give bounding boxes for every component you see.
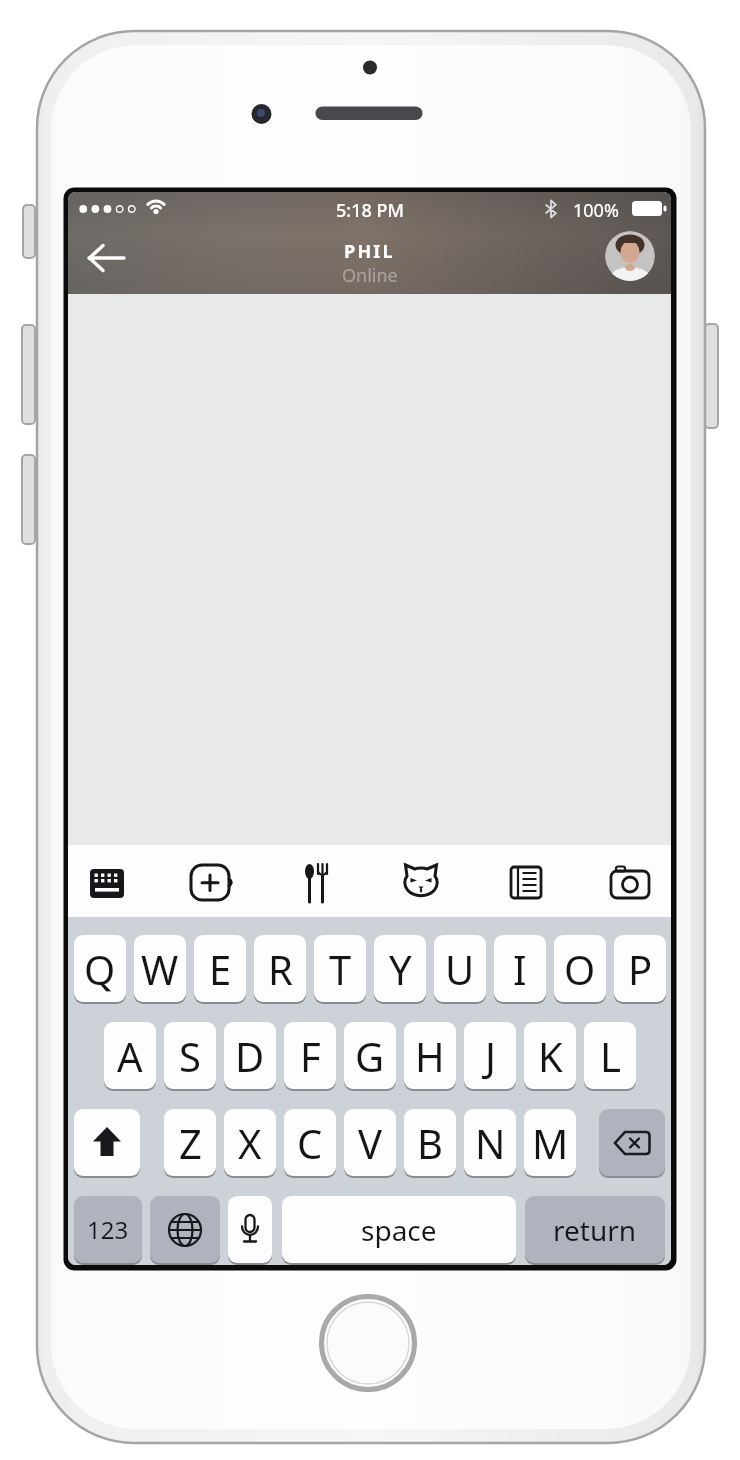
button[interactable]: R <box>254 935 306 1002</box>
staticText: Online <box>342 263 398 288</box>
staticText: I <box>513 942 527 996</box>
staticText: 123 <box>87 1213 129 1246</box>
staticText: G <box>355 1029 385 1083</box>
button[interactable]: J <box>464 1022 516 1089</box>
staticText: B <box>417 1116 443 1170</box>
staticText: A <box>117 1029 143 1083</box>
staticText: X <box>238 1116 262 1170</box>
staticText: return <box>553 1211 637 1249</box>
staticText: E <box>209 942 232 996</box>
staticText: K <box>538 1029 563 1083</box>
staticText: 100% <box>573 198 619 222</box>
staticText: 5:18 PM <box>336 198 404 223</box>
button[interactable]: A <box>104 1022 156 1089</box>
staticText: J <box>485 1029 496 1083</box>
button[interactable]: E <box>194 935 246 1002</box>
staticText: N <box>475 1116 506 1170</box>
staticText: L <box>600 1029 621 1083</box>
button[interactable] <box>599 1109 665 1176</box>
button[interactable]: 123 <box>74 1196 142 1263</box>
staticText: H <box>415 1029 445 1083</box>
staticText: F <box>300 1029 321 1083</box>
staticText: W <box>141 942 179 996</box>
button[interactable]: V <box>344 1109 396 1176</box>
staticText: S <box>179 1029 201 1083</box>
button[interactable]: C <box>284 1109 336 1176</box>
button[interactable]: N <box>464 1109 516 1176</box>
staticText: D <box>235 1029 265 1083</box>
button[interactable] <box>606 859 654 907</box>
button[interactable]: K <box>524 1022 576 1089</box>
button[interactable]: H <box>404 1022 456 1089</box>
staticText: M <box>532 1116 569 1170</box>
staticText: T <box>329 942 352 996</box>
button[interactable]: O <box>554 935 606 1002</box>
button[interactable] <box>292 859 340 907</box>
button[interactable]: B <box>404 1109 456 1176</box>
button[interactable]: W <box>134 935 186 1002</box>
button[interactable] <box>228 1196 272 1263</box>
button[interactable] <box>605 231 655 281</box>
staticText: V <box>358 1116 382 1170</box>
staticText: R <box>268 942 293 996</box>
staticText: U <box>445 942 475 996</box>
button[interactable] <box>187 859 235 907</box>
staticText: Q <box>84 942 116 996</box>
button[interactable]: I <box>494 935 546 1002</box>
button[interactable]: X <box>224 1109 276 1176</box>
button[interactable]: G <box>344 1022 396 1089</box>
button[interactable] <box>74 1109 140 1176</box>
staticText: Y <box>389 942 412 996</box>
button[interactable] <box>502 859 550 907</box>
staticText: PHIL <box>344 239 395 264</box>
button[interactable]: S <box>164 1022 216 1089</box>
button[interactable]: M <box>524 1109 576 1176</box>
staticText: O <box>564 942 596 996</box>
button[interactable]: Q <box>74 935 126 1002</box>
staticText: space <box>361 1211 437 1249</box>
staticText: C <box>297 1116 323 1170</box>
button[interactable]: U <box>434 935 486 1002</box>
button[interactable]: return <box>525 1196 665 1263</box>
staticText: P <box>628 942 653 996</box>
button[interactable]: D <box>224 1022 276 1089</box>
button[interactable]: Y <box>374 935 426 1002</box>
button[interactable] <box>83 859 131 907</box>
button[interactable]: Z <box>164 1109 216 1176</box>
button[interactable]: L <box>584 1022 636 1089</box>
button[interactable]: space <box>282 1196 516 1263</box>
button[interactable]: P <box>614 935 666 1002</box>
button[interactable] <box>150 1196 220 1263</box>
button[interactable] <box>86 243 128 273</box>
button[interactable]: F <box>284 1022 336 1089</box>
button[interactable] <box>397 859 445 907</box>
button[interactable]: T <box>314 935 366 1002</box>
staticText: Z <box>179 1116 202 1170</box>
